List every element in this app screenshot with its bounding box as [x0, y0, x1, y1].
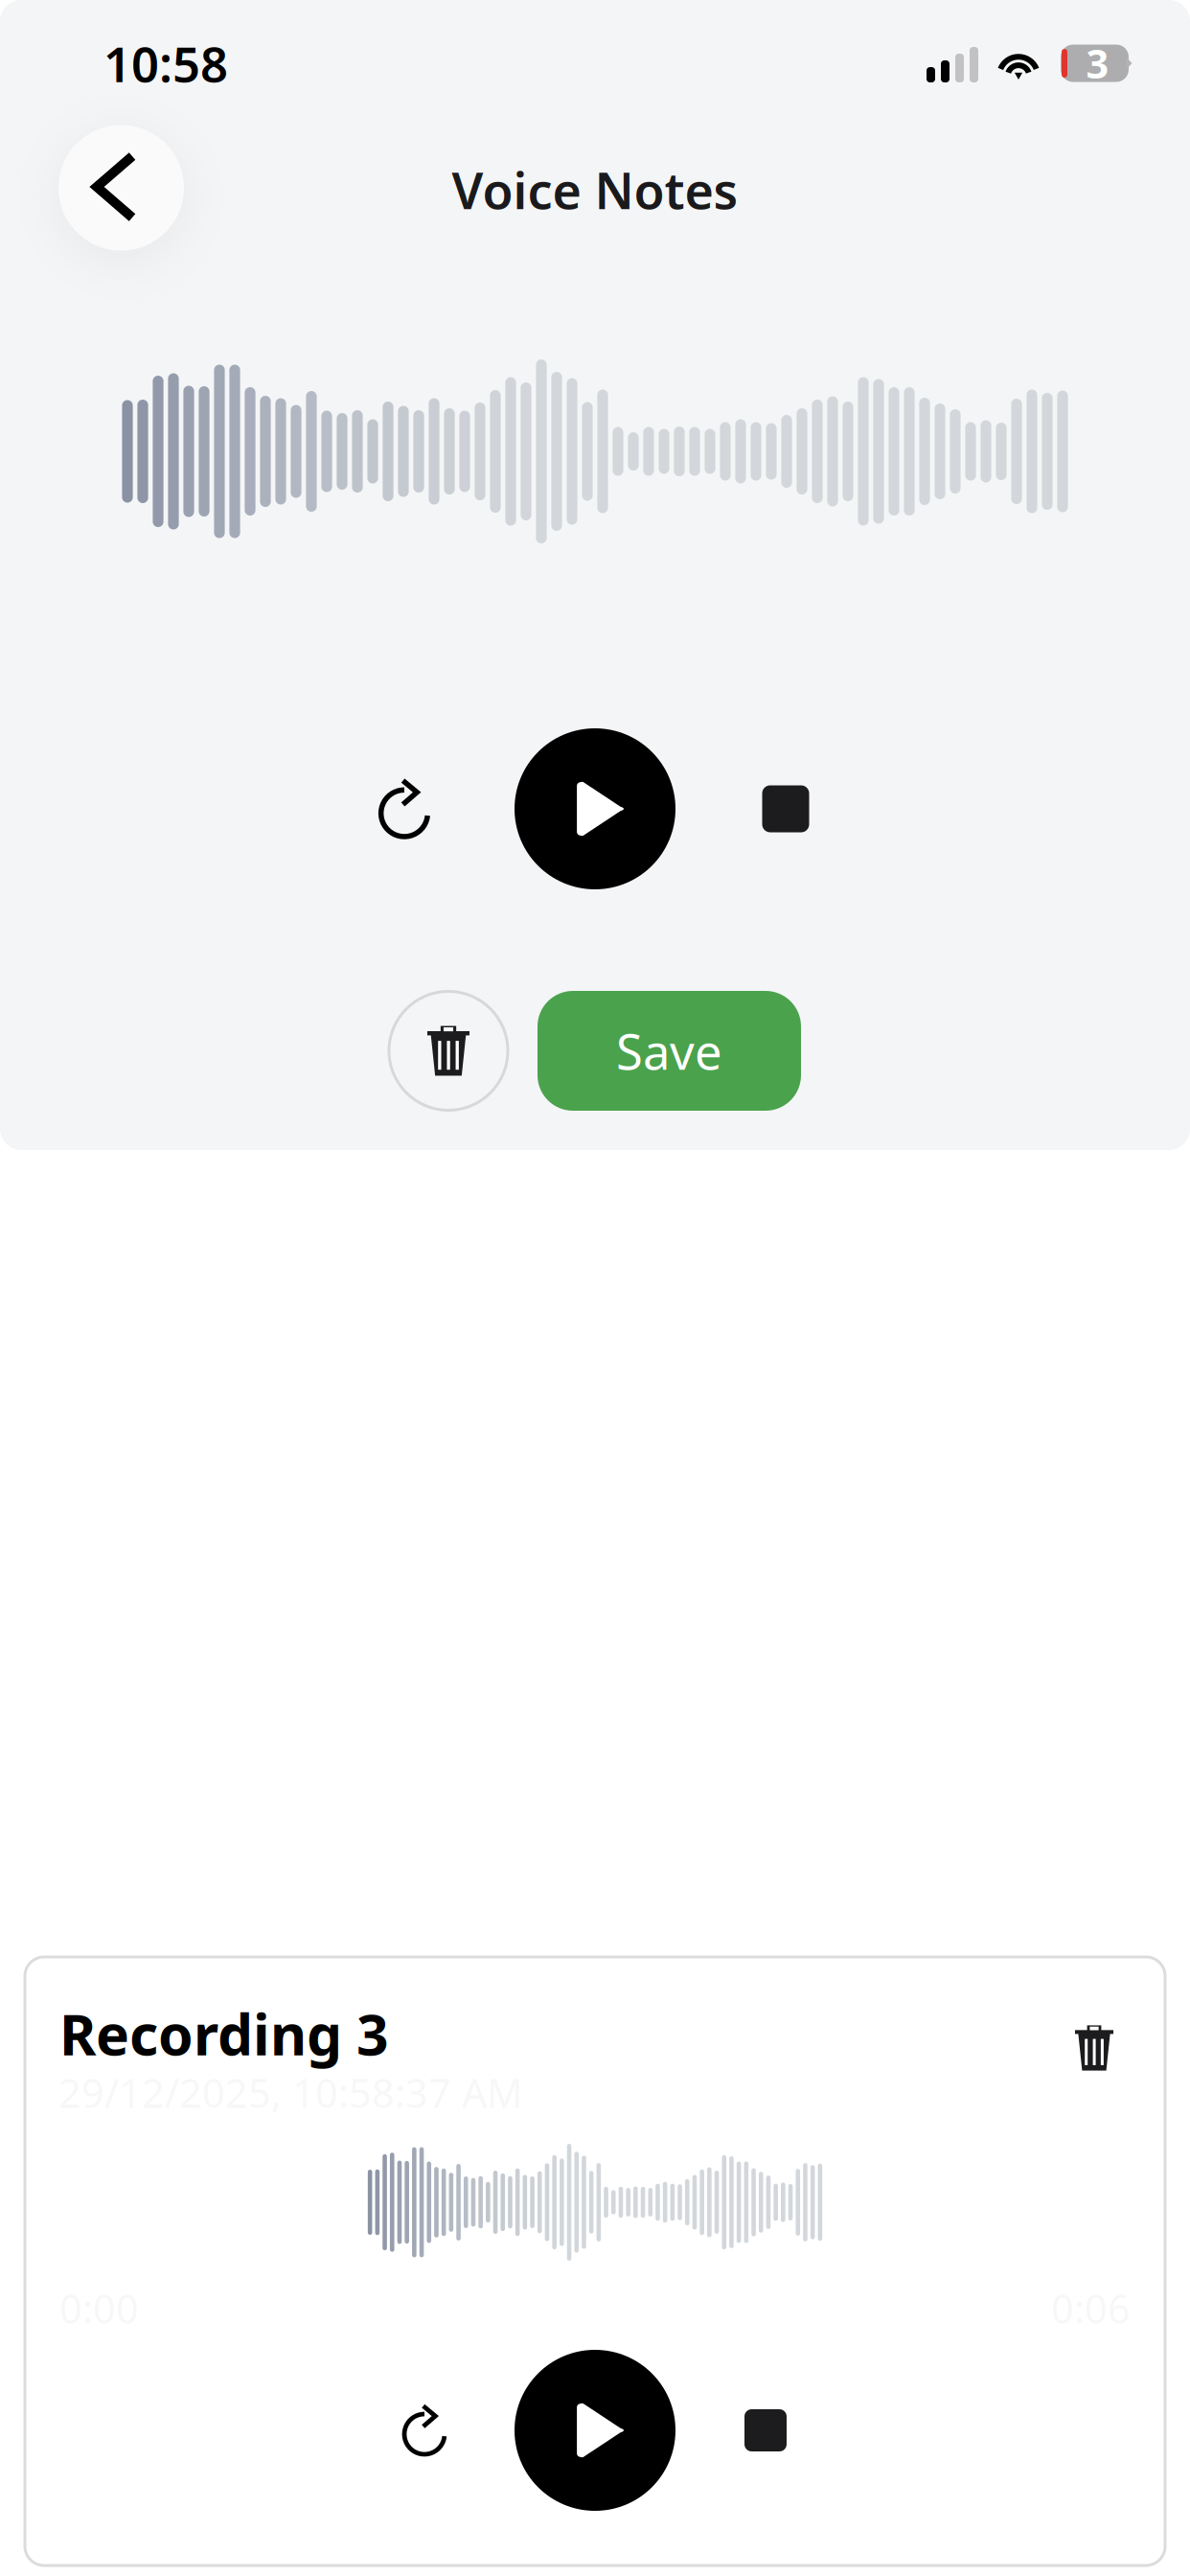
button[interactable]: Play — [515, 728, 675, 889]
staticText: Voice Notes — [452, 157, 738, 223]
staticText: 3 — [1086, 37, 1109, 90]
button[interactable]: Restart — [294, 728, 515, 889]
staticText: Save — [616, 1019, 722, 1083]
staticText: 10:58 — [103, 31, 228, 96]
staticText: 29/12/2025, 10:58:37 AM — [58, 2066, 522, 2119]
button[interactable]: Back — [58, 125, 184, 251]
button[interactable]: Restart — [334, 2350, 515, 2511]
button[interactable]: Stop — [675, 2350, 856, 2511]
button[interactable]: Delete — [389, 991, 508, 1110]
button[interactable]: Stop — [675, 728, 896, 889]
staticText: Recording 3 — [59, 1996, 389, 2071]
button[interactable]: Save — [538, 991, 801, 1111]
button[interactable]: Play — [515, 2350, 675, 2511]
button[interactable]: Delete recording — [1058, 2012, 1131, 2084]
